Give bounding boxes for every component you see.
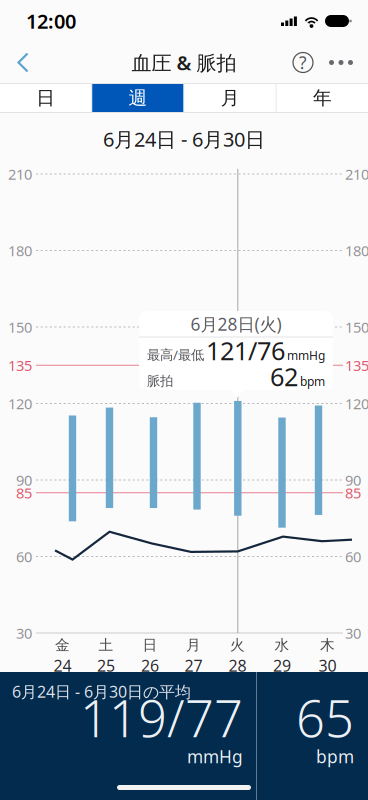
staticText: ? xyxy=(299,51,307,74)
staticText: 28 xyxy=(228,655,246,676)
staticText: 日 xyxy=(142,636,157,654)
staticText: 150 xyxy=(8,317,32,337)
staticText: 27 xyxy=(184,655,202,676)
staticText: 脈拍 xyxy=(147,373,173,389)
staticText: 水 xyxy=(274,636,289,654)
staticText: 24 xyxy=(53,655,71,676)
staticText: 85 xyxy=(16,483,32,502)
staticText: 119/77 xyxy=(80,684,243,751)
staticText: bpm xyxy=(300,373,325,389)
staticText: 30 xyxy=(318,655,336,676)
button[interactable]: 日 xyxy=(0,84,91,112)
staticText: 火 xyxy=(230,636,245,654)
staticText: 120 xyxy=(345,394,368,413)
staticText: mmHg xyxy=(187,745,243,768)
staticText: 90 xyxy=(345,470,361,490)
staticText: 最高/最低 xyxy=(147,346,204,363)
staticText: 25 xyxy=(97,655,115,676)
staticText: 135 xyxy=(8,355,32,375)
staticText: 木 xyxy=(320,636,335,654)
staticText: 月 xyxy=(221,86,240,109)
button[interactable]: 週 xyxy=(92,84,183,112)
staticText: 血圧 & 脈拍 xyxy=(131,49,236,76)
staticText: 60 xyxy=(345,547,361,566)
staticText: 年 xyxy=(313,86,332,109)
staticText: 180 xyxy=(8,241,32,260)
staticText: 30 xyxy=(345,623,361,643)
staticText: 62 xyxy=(270,360,298,393)
staticText: 90 xyxy=(16,470,32,490)
staticText: 210 xyxy=(8,164,32,184)
staticText: mmHg xyxy=(287,347,325,363)
staticText: 150 xyxy=(345,317,368,337)
staticText: 日 xyxy=(36,86,55,109)
staticText: 6月24日 - 6月30日 xyxy=(103,126,265,152)
staticText: 121/76 xyxy=(206,334,285,367)
staticText: 金 xyxy=(55,636,70,654)
staticText: 12:00 xyxy=(26,8,76,34)
button[interactable]: More options xyxy=(322,42,360,82)
staticText: 29 xyxy=(273,655,291,676)
button[interactable]: 年 xyxy=(277,84,368,112)
staticText: 30 xyxy=(16,623,32,643)
staticText: 85 xyxy=(345,483,361,502)
staticText: 6月24日 - 6月30日の平均 xyxy=(12,681,191,702)
button[interactable]: Help xyxy=(284,42,322,82)
staticText: 土 xyxy=(98,636,113,654)
staticText: 65 xyxy=(296,684,354,751)
staticText: 180 xyxy=(345,241,368,260)
staticText: 26 xyxy=(141,655,159,676)
button[interactable]: Back xyxy=(4,42,42,82)
staticText: 120 xyxy=(8,394,32,413)
staticText: 135 xyxy=(345,355,368,375)
staticText: 6月28日(火) xyxy=(190,312,281,335)
staticText: bpm xyxy=(316,745,354,768)
staticText: 週 xyxy=(128,86,147,109)
button[interactable]: 月 xyxy=(184,84,276,112)
staticText: 60 xyxy=(16,547,32,566)
staticText: 210 xyxy=(345,164,368,184)
staticText: 月 xyxy=(186,636,201,654)
